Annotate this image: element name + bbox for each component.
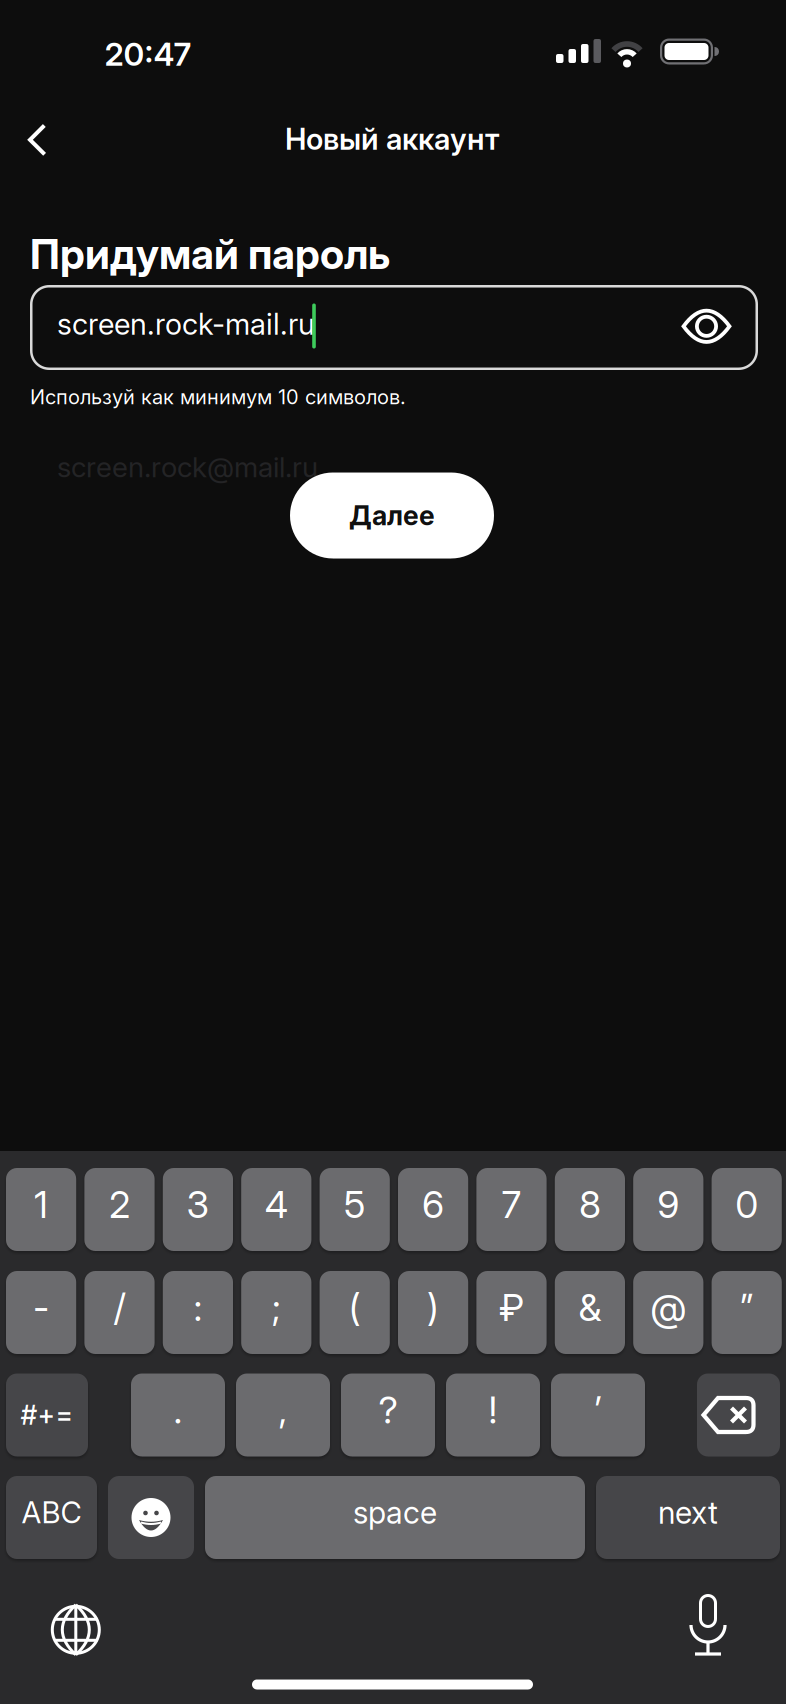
button[interactable]: )	[398, 1271, 468, 1354]
staticText: )	[427, 1285, 439, 1329]
button[interactable]: ’	[551, 1373, 645, 1456]
button[interactable]: ”	[712, 1271, 782, 1354]
staticText: (	[349, 1285, 361, 1329]
staticText: screen.rock-mail.ru	[57, 307, 315, 341]
button[interactable]: Delete	[697, 1373, 780, 1456]
button[interactable]: Dictate	[680, 1592, 736, 1662]
button[interactable]: 7	[476, 1168, 547, 1251]
staticText: ?	[378, 1388, 397, 1432]
button[interactable]: Back	[0, 116, 76, 164]
button[interactable]: Next keyboard	[44, 1598, 108, 1662]
button[interactable]: &	[555, 1271, 625, 1354]
staticText: Новый аккаунт	[285, 122, 499, 156]
button[interactable]: 3	[163, 1168, 233, 1251]
staticText: .	[173, 1388, 182, 1432]
staticText: ;	[272, 1285, 281, 1329]
staticText: 20:47	[104, 35, 191, 73]
button[interactable]: 0	[712, 1168, 782, 1251]
button[interactable]: #+=	[6, 1373, 88, 1456]
button[interactable]: /	[84, 1271, 155, 1354]
staticText: 0	[735, 1182, 758, 1226]
staticText: -	[33, 1285, 49, 1329]
staticText: 1	[34, 1182, 48, 1226]
button[interactable]: !	[446, 1373, 540, 1456]
staticText: 4	[265, 1182, 288, 1226]
staticText: screen.rock@mail.ru	[57, 450, 318, 483]
button[interactable]: 5	[320, 1168, 390, 1251]
staticText: Придумай пароль	[30, 230, 390, 278]
staticText: 5	[344, 1182, 366, 1226]
button[interactable]: space	[205, 1476, 585, 1559]
button[interactable]: Emoji	[108, 1476, 194, 1559]
button[interactable]: 1	[6, 1168, 76, 1251]
staticText: /	[113, 1285, 125, 1329]
staticText: Используй как минимум 10 символов.	[30, 385, 406, 409]
staticText: next	[658, 1494, 718, 1531]
staticText: 8	[579, 1182, 601, 1226]
staticText: space	[353, 1494, 437, 1531]
button[interactable]: 2	[84, 1168, 155, 1251]
staticText: !	[488, 1388, 497, 1432]
button[interactable]: next	[596, 1476, 780, 1559]
button[interactable]: ?	[341, 1373, 435, 1456]
button[interactable]: -	[6, 1271, 76, 1354]
button[interactable]: @	[633, 1271, 703, 1354]
button[interactable]: Далее	[290, 472, 494, 558]
staticText: @	[650, 1285, 686, 1329]
staticText: ”	[740, 1285, 754, 1329]
staticText: 7	[501, 1182, 521, 1226]
button[interactable]: 4	[241, 1168, 311, 1251]
button[interactable]: 6	[398, 1168, 468, 1251]
staticText: 2	[109, 1182, 130, 1226]
button[interactable]: :	[163, 1271, 233, 1354]
button[interactable]: ;	[241, 1271, 311, 1354]
staticText: 3	[186, 1182, 209, 1226]
button[interactable]: ₽	[476, 1271, 547, 1354]
button[interactable]: .	[131, 1373, 225, 1456]
button[interactable]: ABC	[6, 1476, 97, 1559]
staticText: &	[578, 1285, 601, 1329]
staticText: ₽	[499, 1285, 524, 1329]
staticText: ’	[594, 1388, 602, 1432]
staticText: Далее	[349, 500, 435, 531]
staticText: ,	[278, 1388, 287, 1432]
staticText: 6	[422, 1182, 444, 1226]
staticText: :	[193, 1285, 202, 1329]
staticText: ABC	[21, 1495, 81, 1530]
button[interactable]: 8	[555, 1168, 625, 1251]
button[interactable]: ,	[236, 1373, 330, 1456]
button[interactable]: (	[320, 1271, 390, 1354]
staticText: #+=	[20, 1399, 73, 1431]
staticText: 9	[657, 1182, 679, 1226]
button[interactable]: Show password	[670, 290, 742, 362]
button[interactable]: Password	[30, 285, 758, 370]
button[interactable]: 9	[633, 1168, 703, 1251]
